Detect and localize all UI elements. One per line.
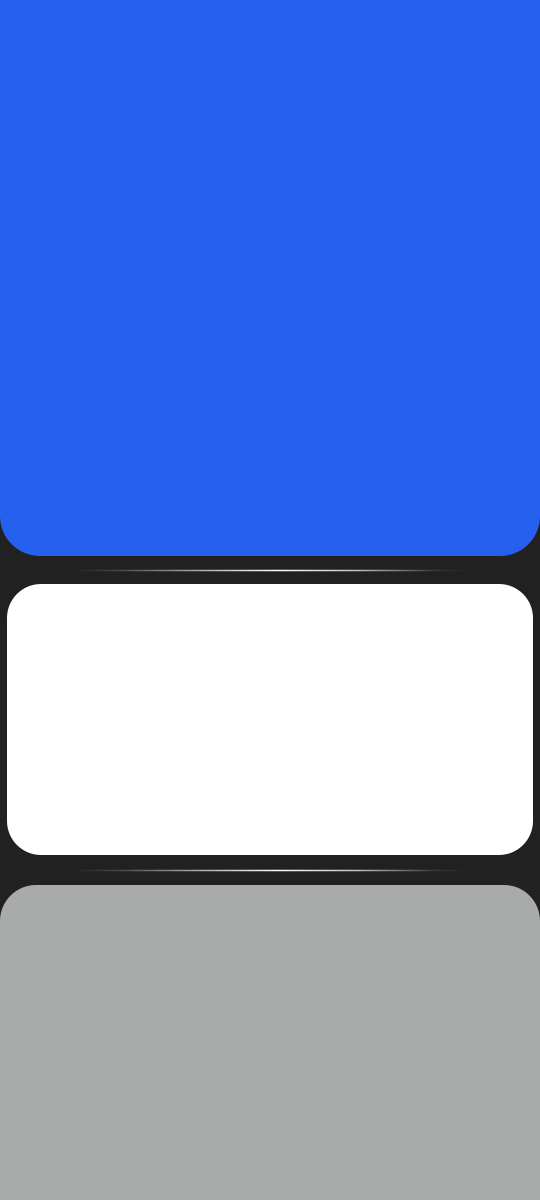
button[interactable]: Footer panel [0, 885, 540, 1200]
button[interactable]: Hero panel [0, 0, 540, 556]
button[interactable]: Content card [7, 584, 533, 855]
